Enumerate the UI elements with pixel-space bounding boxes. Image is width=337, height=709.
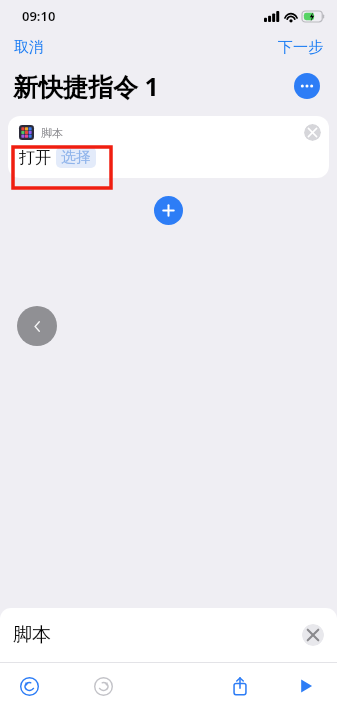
button[interactable]: 返回 [17, 306, 57, 346]
staticText: 下一步 [278, 38, 323, 57]
staticText: 取消 [14, 38, 44, 57]
button[interactable]: 添加操作 [154, 196, 183, 225]
button[interactable]: 撤销 [12, 669, 46, 703]
button[interactable]: 更多选项 [294, 73, 320, 99]
staticText: 打开 [19, 148, 51, 168]
staticText: 新快捷指令 1 [13, 69, 159, 103]
staticText: 选择 [61, 148, 91, 167]
button[interactable]: 脚本 [8, 116, 329, 178]
button[interactable]: 分享 [223, 669, 257, 703]
button[interactable]: 取消 [0, 35, 54, 60]
button[interactable]: 重做 [86, 669, 120, 703]
staticText: 09:10 [22, 7, 56, 25]
button[interactable]: 关闭 [302, 624, 324, 646]
button[interactable]: 移除操作 [304, 124, 321, 141]
button[interactable]: 选择 [56, 147, 96, 168]
button[interactable]: 下一步 [268, 35, 337, 60]
staticText: 脚本 [13, 623, 51, 647]
button[interactable]: 运行 [289, 669, 323, 703]
staticText: 脚本 [41, 126, 63, 140]
